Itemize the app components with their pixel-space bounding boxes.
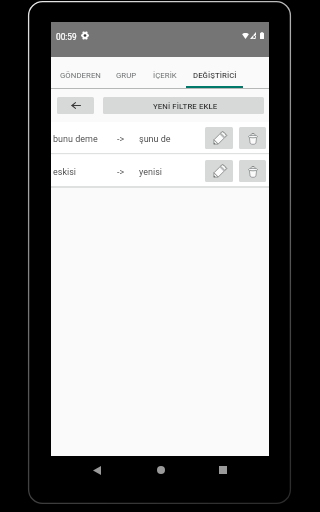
- button[interactable]: İÇERİK: [146, 57, 184, 88]
- button[interactable]: Back: [57, 97, 94, 114]
- button[interactable]: Delete: [239, 160, 266, 182]
- staticText: 00:59: [56, 32, 77, 42]
- button[interactable]: GÖNDEREN: [53, 57, 108, 88]
- button[interactable]: Edit: [205, 160, 233, 182]
- button[interactable]: Delete: [239, 127, 266, 149]
- button[interactable]: Edit: [205, 127, 233, 149]
- staticText: ->: [117, 167, 125, 178]
- staticText: eskisi: [53, 167, 77, 178]
- staticText: GÖNDEREN: [60, 71, 101, 80]
- staticText: YENİ FİLTRE EKLE: [153, 102, 218, 111]
- staticText: şunu de: [139, 134, 171, 145]
- button[interactable]: GRUP: [109, 57, 143, 88]
- staticText: bunu deme: [53, 134, 98, 145]
- staticText: DEĞİŞTİRİCİ: [193, 71, 237, 80]
- staticText: ->: [117, 134, 125, 145]
- staticText: GRUP: [116, 71, 137, 80]
- button[interactable]: Recents: [212, 459, 234, 481]
- button[interactable]: YENİ FİLTRE EKLE: [103, 97, 264, 114]
- staticText: yenisi: [139, 167, 162, 178]
- button[interactable]: Back: [86, 459, 108, 481]
- button[interactable]: DEĞİŞTİRİCİ: [186, 57, 243, 88]
- staticText: İÇERİK: [153, 71, 177, 80]
- button[interactable]: Home: [150, 459, 172, 481]
